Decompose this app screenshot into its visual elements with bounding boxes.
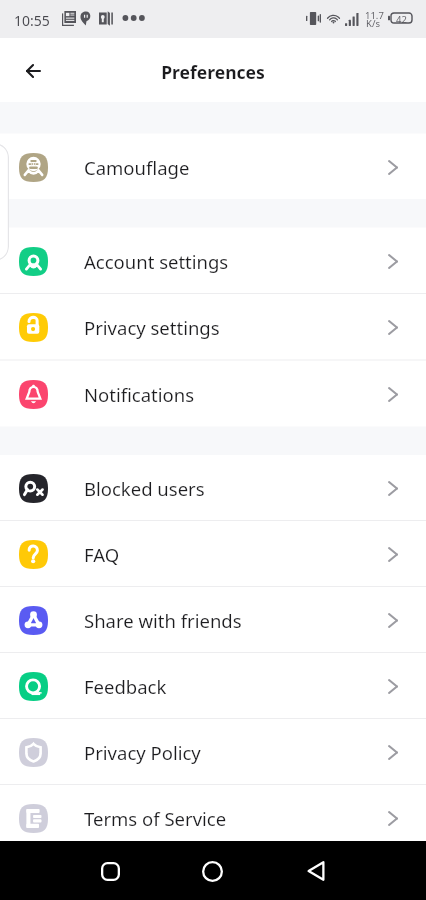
button[interactable]: Privacy Policy bbox=[0, 719, 426, 785]
staticText: Share with friends bbox=[84, 608, 242, 633]
staticText: Blocked users bbox=[84, 476, 205, 501]
staticText: 42 bbox=[396, 13, 407, 23]
button[interactable]: Share with friends bbox=[0, 587, 426, 653]
button[interactable]: FAQ bbox=[0, 521, 426, 587]
button[interactable]: Back bbox=[292, 847, 340, 895]
button[interactable]: Camouflage bbox=[0, 134, 426, 200]
staticText: FAQ bbox=[84, 542, 120, 567]
staticText: K/s bbox=[366, 17, 380, 30]
button[interactable]: Privacy settings bbox=[0, 294, 426, 361]
button[interactable]: Home bbox=[188, 847, 236, 895]
button[interactable]: Back bbox=[13, 51, 53, 91]
staticText: 11.7 bbox=[365, 9, 384, 22]
staticText: Preferences bbox=[161, 60, 265, 84]
staticText: Terms of Service bbox=[84, 806, 227, 831]
staticText: 10:55 bbox=[14, 11, 50, 30]
button[interactable]: Terms of Service bbox=[0, 785, 426, 851]
staticText: Camouflage bbox=[84, 155, 190, 180]
staticText: Account settings bbox=[84, 249, 229, 274]
button[interactable]: Blocked users bbox=[0, 455, 426, 521]
button[interactable]: Notifications bbox=[0, 361, 426, 427]
button[interactable]: Recents bbox=[86, 847, 134, 895]
staticText: Privacy settings bbox=[84, 315, 220, 340]
staticText: Feedback bbox=[84, 674, 167, 699]
staticText: Privacy Policy bbox=[84, 740, 201, 765]
button[interactable]: Account settings bbox=[0, 228, 426, 295]
staticText: Notifications bbox=[84, 382, 195, 407]
button[interactable]: Feedback bbox=[0, 653, 426, 719]
